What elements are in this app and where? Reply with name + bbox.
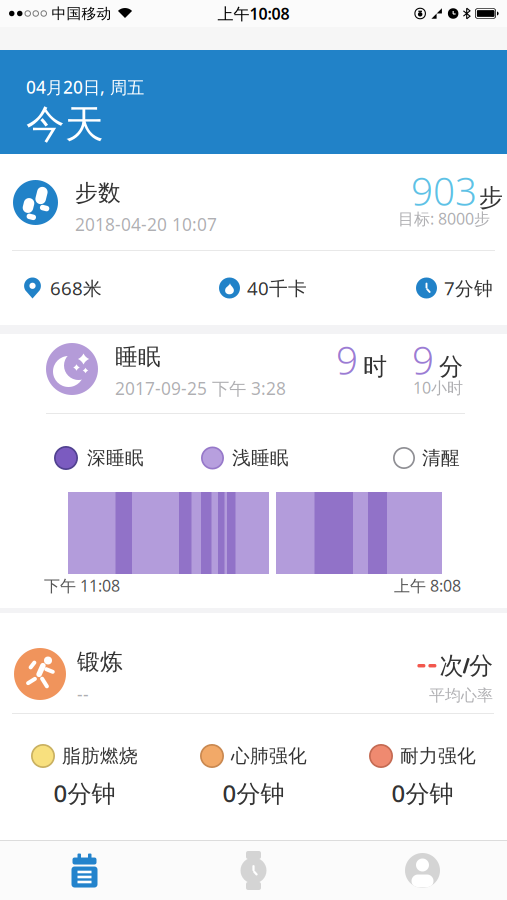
staticText: 7分钟 xyxy=(444,276,493,300)
staticText: 上午 8:08 xyxy=(394,575,461,596)
staticText: 903 xyxy=(411,165,477,216)
staticText: 目标: 8000步 xyxy=(398,208,490,229)
staticText: 时 xyxy=(363,352,387,381)
staticText: 0分钟 xyxy=(391,777,453,809)
staticText: 分 xyxy=(469,651,493,680)
staticText: 668米 xyxy=(50,276,102,300)
staticText: 2018-04-20 10:07 xyxy=(75,213,217,236)
staticText: 心肺强化 xyxy=(231,744,307,767)
staticText: 步数 xyxy=(75,179,121,207)
staticText: 浅睡眠 xyxy=(232,446,289,469)
button[interactable]: 我的 xyxy=(338,841,507,900)
staticText: 2017-09-25 下午 3:28 xyxy=(115,377,286,400)
staticText: 步 xyxy=(479,183,503,212)
staticText: -- xyxy=(77,683,89,706)
staticText: 10小时 xyxy=(413,377,463,398)
staticText: 9 xyxy=(336,334,358,385)
staticText: 次 xyxy=(439,651,463,680)
staticText: 下午 11:08 xyxy=(44,575,120,596)
button[interactable]: 活动 xyxy=(0,841,169,900)
staticText: 清醒 xyxy=(422,446,460,469)
staticText: 9 xyxy=(412,334,434,385)
staticText: 上午10:08 xyxy=(217,3,289,24)
staticText: 0分钟 xyxy=(222,777,284,809)
staticText: 分 xyxy=(439,352,463,381)
staticText: 耐力强化 xyxy=(400,744,476,767)
staticText: 0分钟 xyxy=(53,777,115,809)
staticText: 04月20日, 周五 xyxy=(26,75,144,98)
staticText: 40千卡 xyxy=(247,276,307,300)
button[interactable]: 设备 xyxy=(169,841,338,900)
staticText: 今天 xyxy=(26,100,104,148)
staticText: 中国移动 xyxy=(51,4,111,22)
staticText: 锻炼 xyxy=(77,648,123,676)
staticText: 平均心率 xyxy=(429,685,493,705)
staticText: 脂肪燃烧 xyxy=(62,744,138,767)
staticText: 深睡眠 xyxy=(87,446,144,469)
staticText: 睡眠 xyxy=(115,343,161,371)
